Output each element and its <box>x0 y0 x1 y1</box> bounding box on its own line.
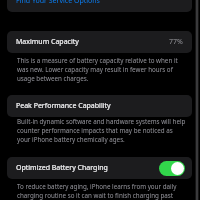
staticText: Optimized Battery Charging <box>16 163 108 173</box>
staticText: Built-in dynamic software and hardware s… <box>17 117 198 144</box>
staticText: This is a measure of battery capacity re… <box>17 56 198 83</box>
button[interactable]: Optimized Battery Charging <box>159 161 185 176</box>
button[interactable]: Maximum Capacity <box>7 31 192 53</box>
staticText: Peak Performance Capability <box>16 101 111 111</box>
button[interactable]: Find Your Service Options <box>7 0 192 12</box>
staticText: Find Your Service Options <box>16 0 100 6</box>
staticText: Maximum Capacity <box>16 37 79 47</box>
staticText: To reduce battery aging, iPhone learns f… <box>17 182 198 200</box>
staticText: 77% <box>169 37 183 47</box>
button[interactable]: Peak Performance Capability <box>7 95 192 117</box>
